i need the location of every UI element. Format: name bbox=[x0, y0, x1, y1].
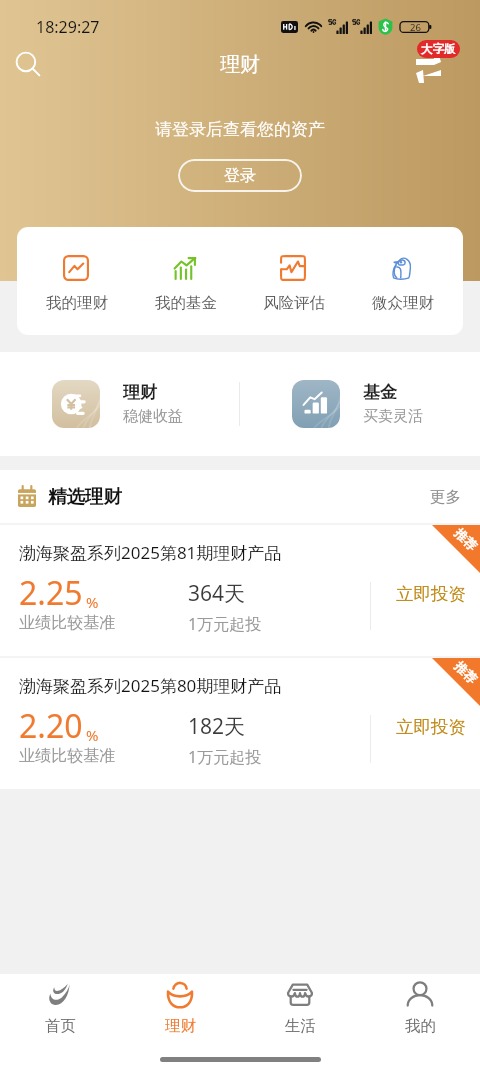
staticText: 渤海聚盈系列2025第81期理财产品 bbox=[19, 541, 282, 564]
staticText: 首页 bbox=[45, 1016, 76, 1036]
staticText: 业绩比较基准 bbox=[19, 746, 115, 766]
staticText: 风险评估 bbox=[263, 293, 325, 313]
staticText: 26 bbox=[410, 21, 421, 34]
staticText: 182天 bbox=[188, 712, 246, 741]
staticText: 业绩比较基准 bbox=[19, 613, 115, 633]
staticText: 生活 bbox=[285, 1016, 316, 1036]
button[interactable]: 登录 bbox=[178, 159, 302, 192]
staticText: 更多 bbox=[430, 487, 461, 507]
staticText: 1万元起投 bbox=[188, 613, 262, 635]
staticText: 登录 bbox=[224, 166, 256, 186]
button[interactable]: 立即投资 bbox=[390, 706, 472, 748]
button[interactable]: 理财 bbox=[0, 380, 239, 428]
staticText: 2.20 bbox=[19, 704, 83, 748]
button[interactable]: 我的基金 bbox=[138, 249, 234, 319]
staticText: 2.25 bbox=[19, 571, 83, 615]
staticText: 我的 bbox=[405, 1016, 436, 1036]
staticText: 立即投资 bbox=[396, 716, 466, 738]
staticText: 基金 bbox=[363, 382, 397, 403]
staticText: 稳健收益 bbox=[123, 407, 183, 426]
button[interactable]: 首页 bbox=[0, 980, 120, 1036]
staticText: 18:29:27 bbox=[36, 16, 100, 38]
button[interactable]: 理财 bbox=[120, 980, 240, 1036]
button[interactable]: 基金 bbox=[240, 380, 480, 428]
staticText: 精选理财 bbox=[48, 485, 122, 508]
staticText: 渤海聚盈系列2025第80期理财产品 bbox=[19, 674, 282, 697]
staticText: 理财 bbox=[123, 382, 157, 403]
staticText: 大字版 bbox=[421, 42, 456, 56]
staticText: % bbox=[86, 725, 99, 745]
staticText: 我的理财 bbox=[46, 293, 108, 313]
button[interactable]: 更多 bbox=[426, 483, 465, 511]
button[interactable]: 风险评估 bbox=[246, 249, 342, 319]
button[interactable]: 我的理财 bbox=[29, 249, 125, 319]
staticText: 1万元起投 bbox=[188, 746, 262, 768]
button[interactable]: Switch to large font version bbox=[410, 32, 470, 82]
button[interactable]: 我的 bbox=[360, 980, 480, 1036]
staticText: 364天 bbox=[188, 579, 246, 608]
staticText: 理财 bbox=[165, 1016, 196, 1036]
button[interactable]: 渤海聚盈系列2025第81期理财产品 bbox=[0, 525, 480, 656]
button[interactable]: 微众理财 bbox=[355, 249, 451, 319]
button[interactable]: 生活 bbox=[240, 980, 360, 1036]
button[interactable]: Search bbox=[6, 42, 50, 86]
staticText: 推荐 bbox=[451, 525, 480, 554]
button[interactable]: 立即投资 bbox=[390, 573, 472, 615]
staticText: 请登录后查看您的资产 bbox=[155, 119, 325, 140]
staticText: 理财 bbox=[220, 52, 260, 77]
staticText: 买卖灵活 bbox=[363, 407, 423, 426]
button[interactable]: 渤海聚盈系列2025第80期理财产品 bbox=[0, 658, 480, 789]
staticText: 我的基金 bbox=[155, 293, 217, 313]
staticText: 推荐 bbox=[451, 658, 480, 687]
staticText: 微众理财 bbox=[372, 293, 434, 313]
staticText: 立即投资 bbox=[396, 583, 466, 605]
staticText: % bbox=[86, 592, 99, 612]
